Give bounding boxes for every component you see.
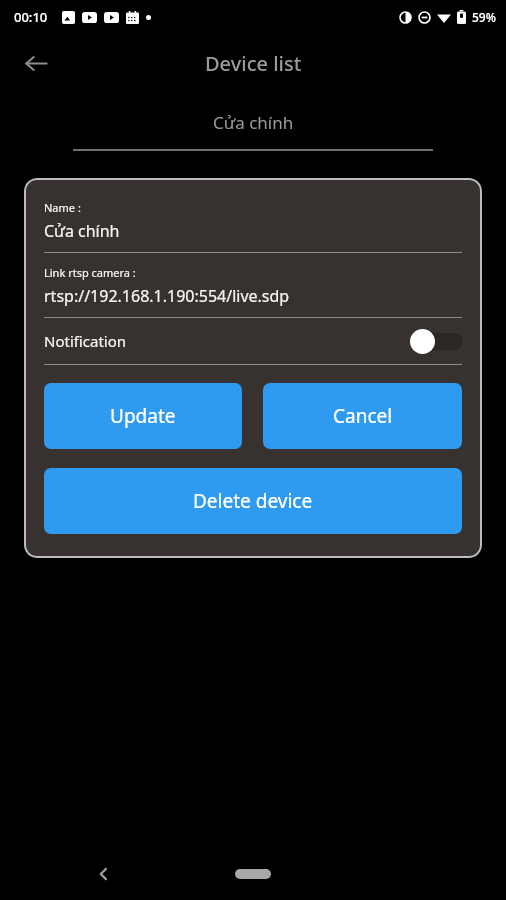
staticText: Delete device (193, 488, 313, 514)
button[interactable]: Home (218, 859, 288, 889)
button[interactable]: Update (44, 383, 242, 449)
button[interactable]: Notification toggle (410, 328, 462, 354)
staticText: Cửa chính (44, 220, 120, 242)
staticText: 00:10 (14, 8, 48, 26)
staticText: Cancel (333, 403, 393, 429)
staticText: Link rtsp camera : (44, 265, 136, 280)
staticText: Device list (205, 50, 302, 77)
button[interactable]: Back (82, 852, 126, 896)
button[interactable]: Delete device (44, 468, 462, 534)
button[interactable]: Cửa chính (0, 92, 506, 151)
staticText: Cửa chính (213, 111, 294, 134)
button[interactable]: Cancel (263, 383, 462, 449)
staticText: 59% (472, 9, 496, 25)
staticText: Update (110, 403, 176, 429)
staticText: rtsp://192.168.1.190:554/live.sdp (44, 285, 290, 307)
staticText: Name : (44, 200, 81, 215)
button[interactable]: Back (14, 41, 58, 85)
button[interactable]: Notification (44, 318, 462, 364)
staticText: Notification (44, 331, 127, 351)
